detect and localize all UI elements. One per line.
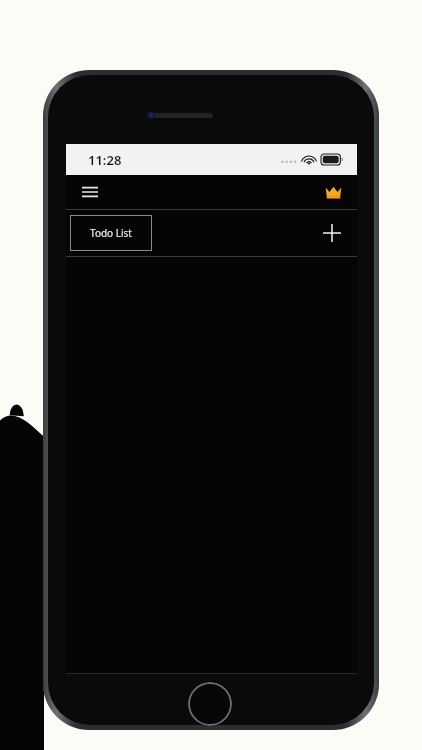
button[interactable]: Menu — [75, 177, 105, 207]
staticText: 11:28 — [88, 151, 122, 169]
button[interactable]: Add — [315, 216, 349, 250]
button[interactable]: Premium — [318, 177, 348, 207]
staticText: Todo List — [90, 226, 132, 240]
button[interactable]: Todo List — [70, 215, 152, 251]
